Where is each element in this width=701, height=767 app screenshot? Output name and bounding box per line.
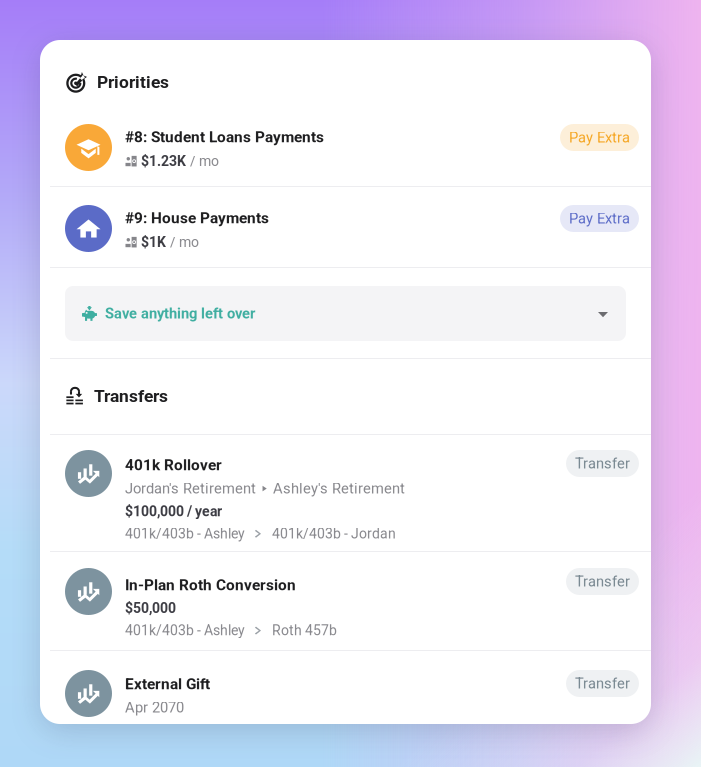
button[interactable]: Pay Extra (560, 124, 639, 151)
staticText: Transfers (94, 386, 168, 406)
button[interactable]: 401k Rollover (40, 435, 651, 551)
staticText: Pay Extra (569, 210, 630, 227)
staticText: Transfer (575, 675, 630, 692)
staticText: 401k Rollover (125, 456, 222, 474)
staticText: External Gift (125, 675, 210, 693)
staticText: Transfer (575, 455, 630, 472)
button[interactable]: Pay Extra (560, 205, 639, 232)
staticText: #9: House Payments (125, 209, 269, 227)
staticText: $1.23K (141, 153, 186, 169)
staticText: Pay Extra (569, 129, 630, 146)
staticText: Jordan's Retirement (125, 480, 256, 497)
button[interactable]: In-Plan Roth Conversion (40, 552, 651, 650)
staticText: Transfer (575, 573, 630, 590)
button[interactable]: Transfer (566, 670, 639, 697)
staticText: / mo (190, 153, 219, 169)
staticText: $100,000 / year (125, 503, 222, 520)
staticText: $50,000 (125, 600, 176, 616)
staticText: Ashley's Retirement (273, 480, 405, 497)
staticText: $1K (141, 234, 166, 250)
button[interactable]: Transfer (566, 568, 639, 595)
button[interactable]: Save anything left over (65, 286, 626, 341)
staticText: #8: Student Loans Payments (125, 128, 324, 146)
button[interactable]: #8: Student Loans Payments (40, 106, 651, 186)
button[interactable]: Transfer (566, 450, 639, 477)
staticText: Roth 457b (272, 622, 337, 639)
staticText: In-Plan Roth Conversion (125, 576, 296, 594)
button[interactable]: #9: House Payments (40, 187, 651, 267)
staticText: 401k/403b - Ashley (125, 622, 245, 639)
staticText: Apr 2070 (125, 699, 184, 716)
button[interactable]: External Gift (40, 651, 651, 724)
staticText: Save anything left over (105, 305, 255, 322)
staticText: / mo (170, 234, 199, 250)
staticText: 401k/403b - Jordan (272, 526, 396, 542)
staticText: Priorities (97, 72, 169, 92)
staticText: 401k/403b - Ashley (125, 526, 245, 542)
